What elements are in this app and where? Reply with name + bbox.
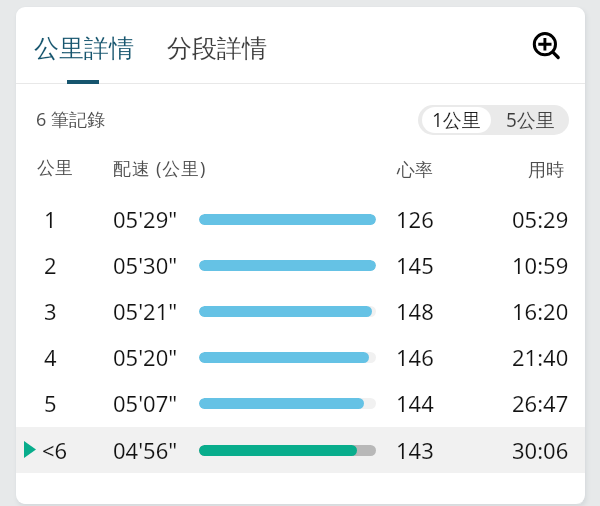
- staticText: 10:59: [512, 250, 569, 280]
- staticText: 05'30": [113, 250, 178, 280]
- button[interactable]: 公里詳情: [22, 7, 149, 83]
- staticText: 1公里: [432, 107, 481, 133]
- staticText: 145: [396, 250, 434, 280]
- button[interactable]: Zoom in: [521, 20, 569, 68]
- staticText: <6: [42, 435, 68, 465]
- button[interactable]: 3: [16, 288, 585, 334]
- button[interactable]: 1: [16, 196, 585, 242]
- staticText: 16:20: [512, 296, 569, 326]
- staticText: 05:29: [512, 204, 569, 234]
- staticText: 公里詳情: [34, 33, 134, 64]
- staticText: 6 筆記錄: [36, 107, 105, 132]
- button[interactable]: 5公里: [491, 105, 569, 135]
- staticText: 126: [396, 204, 434, 234]
- button[interactable]: <6: [16, 427, 585, 473]
- staticText: 3: [44, 296, 57, 326]
- staticText: 05'20": [113, 342, 178, 372]
- staticText: 146: [396, 342, 434, 372]
- staticText: 05'21": [113, 296, 178, 326]
- staticText: 5: [44, 388, 57, 418]
- staticText: 2: [44, 250, 57, 280]
- button[interactable]: 1公里: [422, 107, 491, 133]
- staticText: 心率: [397, 159, 433, 182]
- button[interactable]: 5: [16, 380, 585, 426]
- button[interactable]: 分段詳情: [155, 7, 282, 83]
- staticText: 分段詳情: [167, 33, 267, 64]
- staticText: 26:47: [512, 388, 569, 418]
- staticText: 配速 (公里): [113, 156, 207, 181]
- staticText: 05'29": [113, 204, 178, 234]
- button[interactable]: 2: [16, 242, 585, 288]
- staticText: 用時: [528, 159, 564, 182]
- staticText: 1: [44, 204, 57, 234]
- staticText: 143: [396, 435, 434, 465]
- staticText: 144: [396, 388, 434, 418]
- staticText: 4: [44, 342, 57, 372]
- staticText: 148: [396, 296, 434, 326]
- staticText: 04'56": [113, 435, 178, 465]
- staticText: 21:40: [512, 342, 569, 372]
- staticText: 公里: [37, 157, 73, 180]
- staticText: 30:06: [512, 435, 569, 465]
- staticText: 5公里: [506, 107, 555, 133]
- button[interactable]: 4: [16, 334, 585, 380]
- staticText: 05'07": [113, 388, 178, 418]
